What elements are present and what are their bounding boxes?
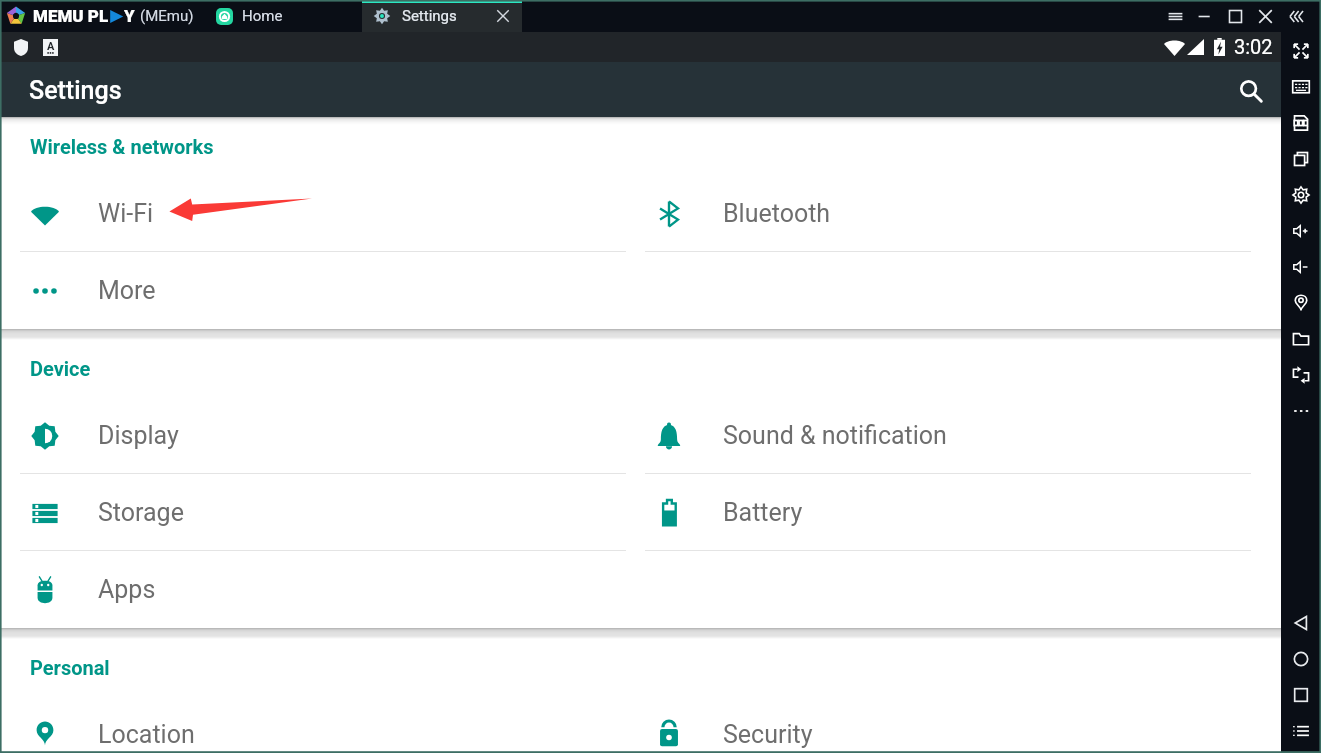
staticText: Storage (98, 498, 184, 527)
button[interactable]: Settings (1281, 177, 1321, 213)
staticText: Wi-Fi (98, 199, 154, 228)
staticText: More (98, 276, 156, 305)
staticText: Sound & notification (723, 421, 947, 450)
staticText: Battery (723, 498, 803, 527)
staticText: Settings (402, 7, 457, 25)
button[interactable]: Keyboard (1281, 69, 1321, 105)
button[interactable]: Fullscreen (1281, 33, 1321, 69)
button[interactable]: More (0, 252, 635, 329)
button[interactable]: Back (1281, 605, 1321, 641)
staticText: Security (723, 720, 813, 749)
button[interactable]: Close tab (492, 5, 514, 27)
button[interactable]: Maximize (1220, 0, 1250, 32)
button[interactable]: Minimize (1190, 0, 1220, 32)
staticText: Bluetooth (723, 199, 831, 228)
button[interactable]: Menu (1281, 713, 1321, 749)
staticText: 3:02 (1234, 35, 1273, 58)
staticText: Apps (98, 575, 156, 604)
staticText: Display (98, 421, 179, 450)
button[interactable]: Apps (0, 551, 635, 628)
button[interactable]: Sound & notification (635, 397, 1281, 474)
button[interactable]: More (1281, 393, 1321, 429)
button[interactable]: Rotate (1281, 357, 1321, 393)
staticText: Y (124, 6, 135, 26)
staticText: Personal (30, 656, 110, 679)
button[interactable]: Recents (1281, 677, 1321, 713)
staticText: MEMU PL (33, 6, 109, 26)
button[interactable]: Home (207, 0, 292, 32)
button[interactable]: Storage (0, 474, 635, 551)
button[interactable]: Display (0, 397, 635, 474)
button[interactable]: Volume up (1281, 213, 1321, 249)
button[interactable]: Bluetooth (635, 175, 1281, 252)
button[interactable]: Home (1281, 641, 1321, 677)
button[interactable]: Location (0, 696, 635, 753)
staticText: Location (98, 720, 195, 749)
staticText: A (47, 40, 55, 53)
staticText: Wireless & networks (30, 135, 214, 158)
button[interactable]: Install APK (1281, 105, 1321, 141)
staticText: Device (30, 357, 91, 380)
button[interactable]: Search (1230, 70, 1272, 112)
button[interactable]: Shared folder (1281, 321, 1321, 357)
button[interactable]: Settings (362, 0, 522, 32)
button[interactable]: Wi-Fi (0, 175, 635, 252)
button[interactable]: Multi window (1281, 141, 1321, 177)
button[interactable]: Close (1250, 0, 1280, 32)
button[interactable]: Location (1281, 285, 1321, 321)
button[interactable]: Battery (635, 474, 1281, 551)
staticText: Home (242, 7, 283, 25)
button[interactable]: Volume down (1281, 249, 1321, 285)
button[interactable]: Security (635, 696, 1281, 753)
button[interactable]: Collapse sidebar (1280, 0, 1310, 32)
button[interactable]: Menu (1160, 0, 1190, 32)
staticText: (MEmu) (140, 7, 194, 25)
staticText: Settings (29, 76, 122, 105)
